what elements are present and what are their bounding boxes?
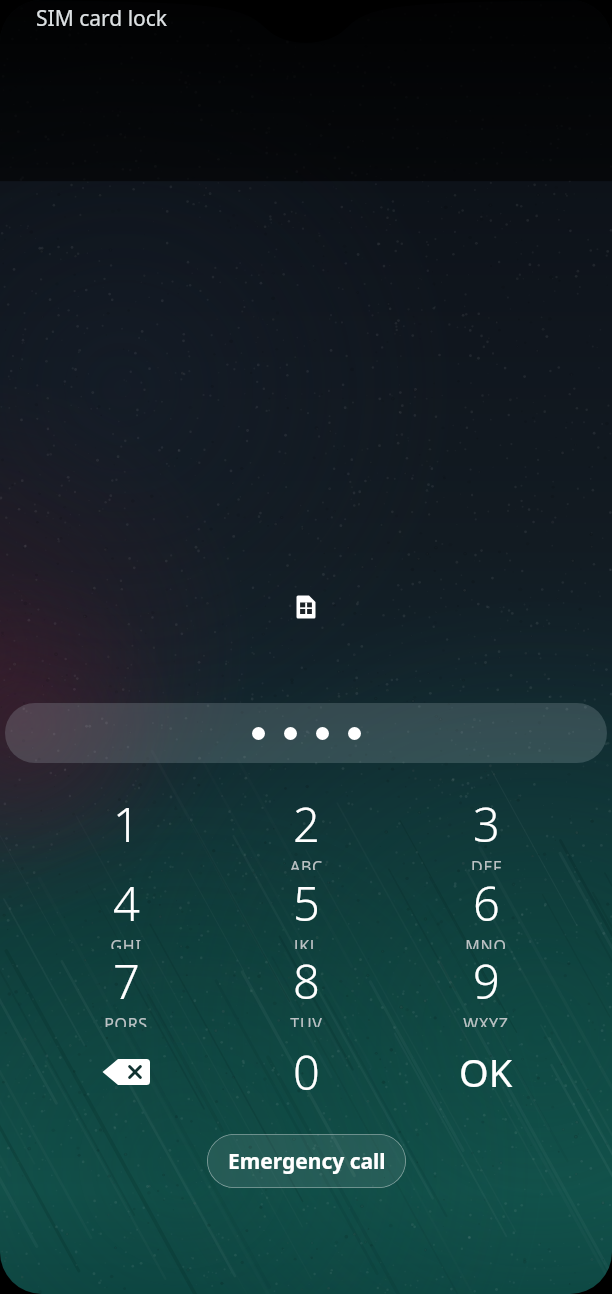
staticText: 7: [113, 949, 140, 1013]
staticText: OK: [459, 1046, 513, 1098]
staticText: 1: [113, 792, 140, 856]
button[interactable]: 4: [74, 871, 178, 949]
button[interactable]: 8: [254, 949, 358, 1027]
staticText: 0: [293, 1040, 320, 1104]
staticText: MNO: [465, 935, 507, 949]
staticText: TUV: [290, 1013, 323, 1027]
staticText: 3: [473, 792, 500, 856]
button[interactable]: 3: [434, 792, 538, 870]
staticText: SIM card lock: [36, 4, 168, 33]
button[interactable]: Emergency call: [207, 1134, 406, 1188]
button[interactable]: 5: [254, 871, 358, 949]
button[interactable]: Backspace: [82, 1036, 170, 1108]
staticText: 8: [293, 949, 320, 1013]
other: SIM card: [293, 594, 319, 620]
staticText: 5: [293, 871, 320, 935]
button[interactable]: 2: [254, 792, 358, 870]
button[interactable]: 9: [434, 949, 538, 1027]
staticText: 2: [293, 792, 320, 856]
button[interactable]: 6: [434, 871, 538, 949]
staticText: ABC: [290, 856, 323, 870]
staticText: PQRS: [104, 1013, 148, 1027]
button[interactable]: 7: [74, 949, 178, 1027]
staticText: DEF: [471, 856, 502, 870]
button[interactable]: 0: [262, 1036, 350, 1108]
staticText: JKL: [294, 935, 319, 949]
staticText: 4: [113, 871, 140, 935]
button[interactable]: 1: [74, 792, 178, 870]
staticText: 9: [473, 949, 500, 1013]
staticText: WXYZ: [463, 1013, 509, 1027]
staticText: Emergency call: [228, 1147, 386, 1176]
button[interactable]: OK: [426, 1036, 546, 1108]
button[interactable]: PIN entry: [5, 703, 607, 763]
staticText: GHI: [110, 935, 142, 949]
staticText: 6: [473, 871, 500, 935]
